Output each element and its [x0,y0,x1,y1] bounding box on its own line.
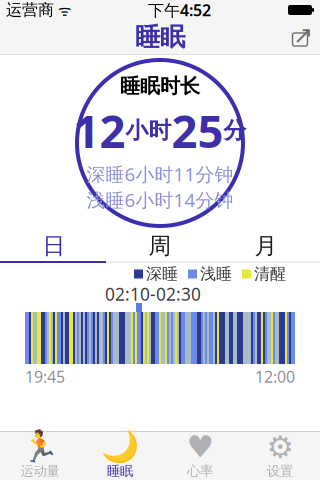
staticText: 浅睡6小时14分钟 [86,187,233,212]
staticText: ᯤ [54,0,71,20]
staticText: 日 [42,232,65,260]
button[interactable]: 🏃 [0,432,80,480]
staticText: 深睡6小时11分钟 [86,162,233,186]
button[interactable]: 月 [213,231,319,261]
staticText: 19:45 [25,366,65,387]
staticText: 12 [73,100,125,161]
button[interactable]: 🌙 [80,432,160,480]
staticText: 小时 [125,117,171,144]
staticText: 浅睡 [200,264,232,284]
staticText: 下午4:52 [148,0,211,21]
button[interactable]: 日 [1,231,107,261]
staticText: 心率 [187,463,213,479]
button[interactable]: ⚙ [240,432,320,480]
staticText: ⚙ [266,429,293,464]
staticText: 25 [171,100,223,161]
staticText: 分 [223,117,246,144]
staticText: 🏃 [21,429,59,464]
staticText: 设置 [267,463,293,479]
staticText: 02:10-02:30 [105,282,201,305]
staticText: 运营商 [6,0,54,20]
staticText: 清醒 [254,264,286,284]
staticText: 月 [254,232,277,260]
staticText: ↗ [293,21,313,49]
button[interactable]: 周 [107,231,213,261]
staticText: ♥ [186,429,213,464]
staticText: 睡眠 [135,21,185,52]
staticText: 睡眠 [107,463,133,479]
button[interactable]: ♥ [160,432,240,480]
staticText: 🌙 [101,429,139,464]
staticText: 12:00 [255,366,295,387]
button[interactable]: 分享 [280,20,320,54]
staticText: 运动量 [20,463,59,479]
staticText: 深睡 [146,264,178,284]
staticText: 周 [148,232,171,260]
staticText: 睡眠时长 [120,74,200,98]
